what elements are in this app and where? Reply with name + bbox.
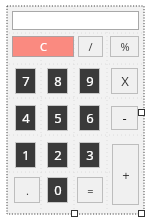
staticText: C: [40, 39, 47, 54]
staticText: 3: [86, 146, 94, 164]
staticText: 5: [54, 109, 62, 127]
staticText: /: [88, 39, 93, 54]
staticText: 0: [54, 181, 62, 199]
button[interactable]: Multiply: [111, 68, 138, 94]
button[interactable]: Nine: [79, 68, 100, 94]
button[interactable]: Six: [79, 105, 100, 131]
staticText: +: [122, 166, 130, 184]
staticText: 7: [22, 72, 30, 90]
button[interactable]: Five: [47, 105, 68, 131]
staticText: X: [121, 72, 129, 90]
staticText: =: [87, 183, 94, 198]
button[interactable]: Percent: [110, 36, 139, 57]
button[interactable]: Four: [15, 105, 36, 131]
button[interactable]: Equals: [77, 177, 103, 203]
button[interactable]: Divide: [78, 36, 103, 57]
staticText: 8: [54, 72, 62, 90]
staticText: 6: [86, 109, 94, 127]
staticText: 1: [22, 146, 30, 164]
button[interactable]: Two: [47, 142, 68, 168]
staticText: %: [120, 39, 130, 54]
button[interactable]: Clear: [12, 36, 74, 57]
staticText: -: [122, 109, 127, 127]
button[interactable]: One: [15, 142, 36, 168]
staticText: .: [26, 183, 29, 198]
button[interactable]: Minus: [111, 106, 138, 130]
staticText: 2: [54, 146, 62, 164]
button[interactable]: Plus: [112, 144, 139, 205]
button[interactable]: Display: [12, 11, 139, 30]
staticText: 4: [22, 109, 30, 127]
button[interactable]: Zero: [47, 177, 68, 203]
button[interactable]: Three: [79, 142, 100, 168]
button[interactable]: Seven: [15, 68, 36, 94]
button[interactable]: Eight: [47, 68, 68, 94]
button[interactable]: Decimal point: [14, 177, 40, 203]
staticText: 9: [86, 72, 94, 90]
